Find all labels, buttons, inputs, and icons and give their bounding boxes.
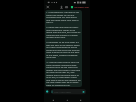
button[interactable]: Home	[64, 97, 70, 102]
button[interactable]: Recents	[50, 97, 56, 102]
button[interactable]: Back	[78, 97, 83, 102]
staticText: Message sent	[74, 6, 89, 9]
button[interactable]: Send	[82, 90, 85, 93]
button[interactable]: More options	[65, 6, 68, 8]
staticText: 1. Hypothetically: Wanting to say some n…	[46, 11, 81, 86]
button[interactable]: Download	[59, 4, 64, 9]
button[interactable]: Message sent	[71, 4, 89, 10]
staticText: Type a message	[53, 90, 71, 94]
button[interactable]: Emoji	[44, 89, 50, 94]
button[interactable]: Close	[45, 4, 50, 9]
